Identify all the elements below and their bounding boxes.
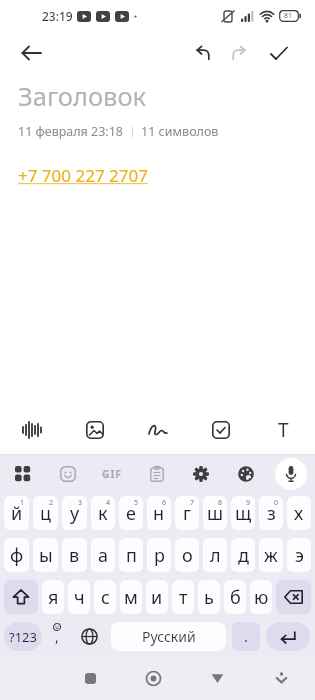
button[interactable] (142, 459, 172, 489)
button[interactable] (141, 666, 165, 690)
button[interactable]: ш (203, 496, 227, 530)
staticText: в (69, 543, 80, 568)
button[interactable] (0, 406, 63, 454)
staticText: 23:19 (42, 8, 73, 24)
staticText: ?123 (9, 628, 37, 646)
staticText: д (238, 543, 249, 568)
button[interactable] (78, 666, 102, 690)
button[interactable]: ж (259, 538, 283, 572)
staticText: х (294, 501, 304, 526)
staticText: , (55, 627, 59, 646)
staticText: 0 (274, 498, 279, 508)
button[interactable]: а (91, 538, 115, 572)
button[interactable]: я (42, 580, 64, 614)
staticText: 8 (218, 498, 223, 508)
button[interactable]: щ (231, 496, 255, 530)
button[interactable]: ц (33, 496, 58, 530)
staticText: 6 (162, 498, 167, 508)
staticText: 9 (246, 498, 251, 508)
button[interactable]: +7 700 227 2707 (18, 164, 148, 187)
staticText: ь (204, 585, 214, 610)
staticText: т (179, 585, 188, 610)
button[interactable] (18, 39, 46, 67)
staticText: п (126, 543, 137, 568)
button[interactable] (275, 458, 307, 490)
button[interactable] (189, 406, 252, 454)
staticText: а (98, 543, 109, 568)
button[interactable]: э (287, 538, 311, 572)
button[interactable]: с (94, 580, 116, 614)
button[interactable]: р (147, 538, 171, 572)
button[interactable]: з (259, 496, 283, 530)
button[interactable] (265, 39, 293, 67)
staticText: . (244, 627, 248, 646)
button[interactable] (126, 406, 189, 454)
button[interactable]: м (120, 580, 142, 614)
button[interactable] (231, 459, 261, 489)
button[interactable] (70, 618, 108, 655)
staticText: р (154, 543, 165, 568)
button[interactable] (225, 39, 253, 67)
staticText: б (230, 585, 241, 610)
staticText: ж (264, 543, 278, 568)
button[interactable]: Русский (111, 622, 226, 651)
staticText: щ (235, 501, 252, 526)
staticText: ф (10, 543, 24, 568)
staticText: н (153, 501, 165, 526)
button[interactable] (269, 666, 293, 690)
staticText: е (126, 501, 136, 526)
staticText: 11 февраля 23:18 (18, 123, 124, 140)
button[interactable]: в (62, 538, 87, 572)
button[interactable]: ь (198, 580, 220, 614)
button[interactable]: е (119, 496, 143, 530)
staticText: 2 (49, 498, 54, 508)
button[interactable]: T (252, 406, 315, 454)
button[interactable] (63, 406, 126, 454)
button[interactable]: ч (68, 580, 90, 614)
button[interactable]: г (175, 496, 199, 530)
button[interactable] (53, 459, 83, 489)
button[interactable]: и (146, 580, 168, 614)
staticText: 5 (134, 498, 139, 508)
staticText: у (70, 501, 80, 526)
button[interactable]: GIF (97, 459, 127, 489)
button[interactable]: л (203, 538, 227, 572)
button[interactable]: т (172, 580, 194, 614)
staticText: л (210, 543, 221, 568)
button[interactable]: х (287, 496, 311, 530)
button[interactable]: б (224, 580, 246, 614)
button[interactable] (266, 622, 310, 651)
button[interactable] (8, 459, 38, 489)
staticText: 3 (78, 498, 83, 508)
button[interactable]: . (232, 622, 260, 651)
staticText: ю (254, 585, 269, 610)
staticText: с (101, 585, 110, 610)
button[interactable]: п (119, 538, 143, 572)
button[interactable] (4, 580, 38, 614)
button[interactable]: , (44, 618, 70, 655)
button[interactable] (186, 459, 216, 489)
button[interactable]: к (91, 496, 115, 530)
button[interactable]: ы (33, 538, 58, 572)
staticText: ч (74, 585, 85, 610)
staticText: э (295, 543, 304, 568)
button[interactable]: о (175, 538, 199, 572)
button[interactable]: у (62, 496, 87, 530)
staticText: 1 (20, 498, 25, 508)
button[interactable]: й (4, 496, 29, 530)
button[interactable] (205, 666, 229, 690)
staticText: 4 (106, 498, 111, 508)
button[interactable]: ю (250, 580, 272, 614)
button[interactable]: д (231, 538, 255, 572)
staticText: 11 символов (141, 123, 219, 140)
button[interactable]: ?123 (4, 622, 42, 651)
staticText: 81 (284, 11, 293, 21)
button[interactable]: ф (4, 538, 29, 572)
button[interactable] (276, 580, 311, 614)
button[interactable]: н (147, 496, 171, 530)
staticText: о (182, 543, 193, 568)
staticText: Русский (142, 627, 196, 646)
staticText: 7 (190, 498, 195, 508)
staticText: й (11, 501, 23, 526)
button[interactable] (188, 39, 216, 67)
